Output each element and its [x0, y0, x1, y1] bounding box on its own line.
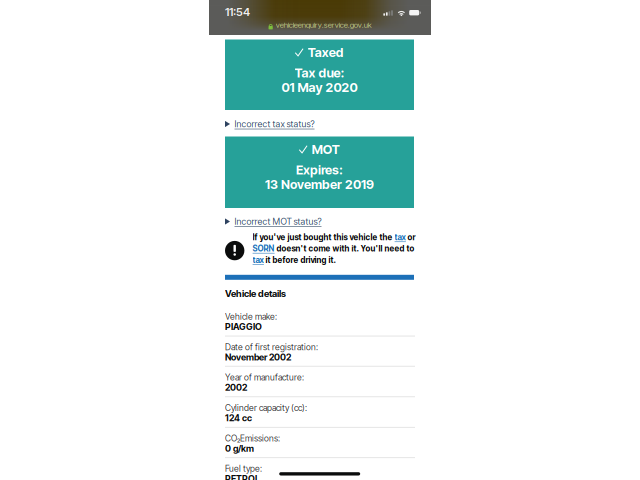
button[interactable]: Incorrect tax status? — [225, 118, 415, 129]
staticText: Tax due: — [294, 65, 344, 81]
staticText: Vehicle details — [225, 288, 286, 299]
staticText: it before driving it. — [264, 255, 336, 265]
staticText: Cylinder capacity (cc): — [225, 403, 307, 413]
staticText: Incorrect tax status? — [234, 119, 314, 129]
staticText: Expires: — [296, 162, 343, 178]
staticText: Vehicle make: — [225, 311, 277, 322]
staticText: SORN — [253, 244, 275, 253]
staticText: tax — [253, 255, 264, 265]
staticText: 11:54 — [225, 5, 250, 19]
staticText: 13 November 2019 — [265, 177, 374, 192]
staticText: November 2002 — [225, 352, 291, 363]
staticText: vehicleenquiry.service.gov.uk — [276, 20, 372, 30]
staticText: PETROL — [225, 473, 260, 480]
staticText: or — [406, 232, 416, 242]
staticText: CO₂Emissions: — [225, 433, 280, 444]
staticText: Fuel type: — [225, 463, 262, 474]
staticText: Year of manufacture: — [225, 372, 304, 383]
staticText: 0 g/km — [225, 443, 254, 454]
staticText: Taxed — [308, 45, 344, 60]
button[interactable]: Incorrect MOT status? — [225, 216, 415, 227]
staticText: PIAGGIO — [225, 321, 262, 332]
staticText: tax — [395, 232, 406, 242]
staticText: 2002 — [225, 382, 247, 393]
staticText: doesn't come with it. You'll need to — [275, 244, 415, 253]
staticText: If you've just bought this vehicle the — [253, 232, 395, 242]
staticText: MOT — [312, 142, 340, 157]
staticText: 124 cc — [225, 412, 252, 423]
staticText: 01 May 2020 — [281, 80, 357, 95]
staticText: Incorrect MOT status? — [234, 216, 321, 227]
staticText: Date of first registration: — [225, 342, 318, 352]
